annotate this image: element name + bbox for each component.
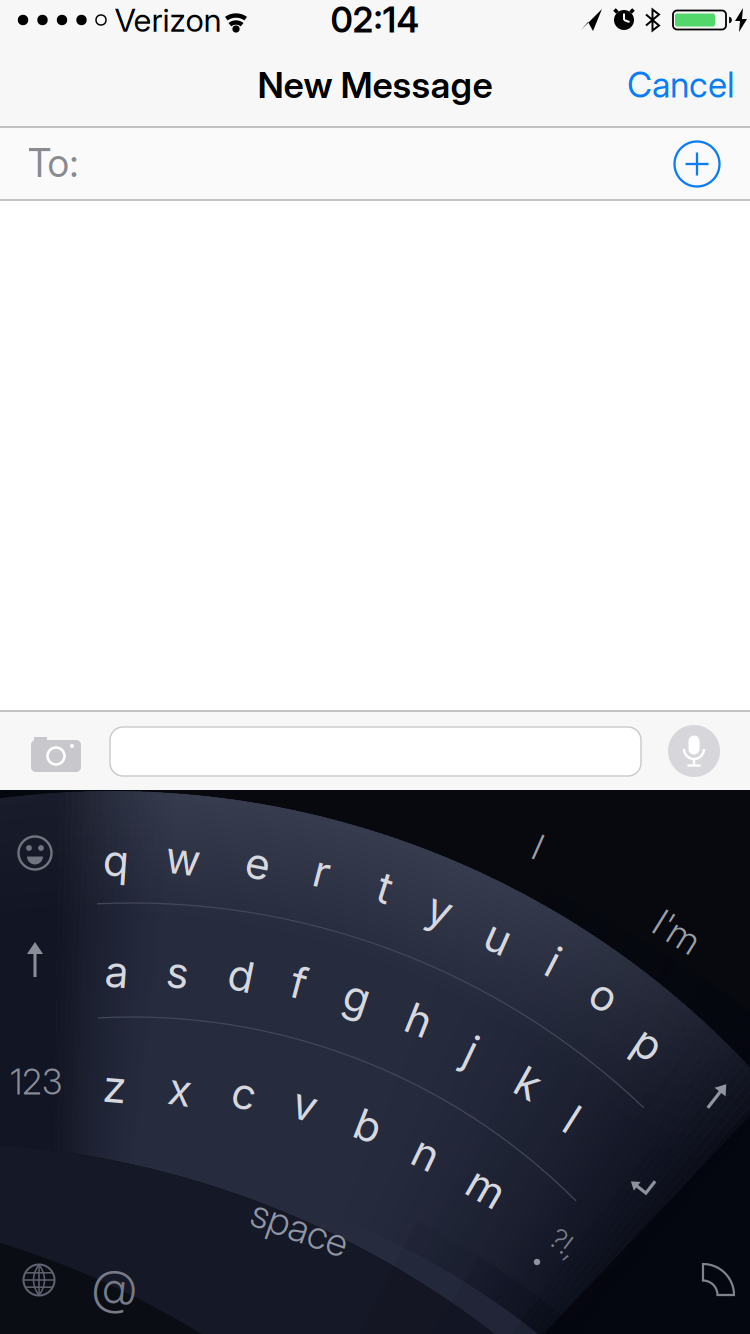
button[interactable]: i xyxy=(548,937,558,987)
staticText: h xyxy=(406,995,431,1045)
staticText: y xyxy=(428,885,452,935)
staticText: m xyxy=(467,1163,504,1213)
staticText: j xyxy=(466,1026,476,1076)
staticText: I xyxy=(534,826,542,868)
button[interactable]: x xyxy=(168,1065,191,1115)
button[interactable]: s xyxy=(166,948,189,998)
button[interactable]: Add Contact xyxy=(673,140,721,188)
button[interactable]: e xyxy=(245,839,270,889)
button[interactable]: Emoji xyxy=(13,831,57,875)
staticText: t xyxy=(378,863,392,913)
button[interactable]: m xyxy=(467,1163,504,1213)
staticText: i xyxy=(548,937,558,987)
staticText: I'm xyxy=(653,910,701,954)
staticText: Cancel xyxy=(627,65,735,105)
button[interactable]: Next keyboard xyxy=(17,1258,61,1302)
staticText: k xyxy=(516,1058,539,1108)
staticText: a xyxy=(105,947,129,997)
button[interactable]: w xyxy=(165,834,200,884)
staticText: 02:14 xyxy=(330,0,419,40)
staticText: o xyxy=(591,971,617,1021)
staticText: d xyxy=(228,951,254,1001)
staticText: f xyxy=(291,958,307,1008)
button[interactable]: y xyxy=(428,885,452,935)
button[interactable]: o xyxy=(591,971,617,1021)
staticText: @ xyxy=(91,1259,138,1315)
button[interactable]: I xyxy=(534,826,542,868)
button[interactable]: space xyxy=(249,1205,350,1251)
staticText: u xyxy=(485,913,510,963)
staticText: b xyxy=(355,1101,381,1151)
staticText: c xyxy=(232,1069,256,1119)
staticText: p xyxy=(635,1019,661,1069)
staticText: n xyxy=(413,1129,438,1179)
button[interactable]: I'm xyxy=(653,910,701,954)
button[interactable]: a xyxy=(105,947,129,997)
button[interactable]: k xyxy=(516,1058,539,1108)
button[interactable]: 123 xyxy=(10,1062,62,1102)
staticText: r xyxy=(314,847,330,897)
staticText: s xyxy=(166,948,189,998)
button[interactable]: ?!, xyxy=(550,1226,578,1259)
staticText: 123 xyxy=(10,1062,62,1102)
button[interactable]: Shift xyxy=(15,937,55,981)
staticText: Verizon xyxy=(114,1,221,39)
staticText: v xyxy=(293,1080,317,1130)
button[interactable]: n xyxy=(413,1129,438,1179)
button[interactable]: Camera xyxy=(26,728,86,776)
button[interactable]: g xyxy=(344,972,370,1022)
staticText: z xyxy=(103,1062,127,1112)
button[interactable]: h xyxy=(406,995,431,1045)
staticText: To: xyxy=(27,140,78,186)
button[interactable]: r xyxy=(314,847,330,897)
staticText: q xyxy=(103,836,129,886)
staticText: l xyxy=(567,1094,577,1144)
button[interactable]: Return xyxy=(621,1165,665,1209)
button[interactable]: u xyxy=(485,913,510,963)
button[interactable]: Dismiss keyboard xyxy=(697,1255,741,1299)
staticText: ?!, xyxy=(550,1226,578,1259)
button[interactable]: Cancel xyxy=(627,65,735,105)
button[interactable]: j xyxy=(466,1026,476,1076)
button[interactable]: c xyxy=(232,1069,256,1119)
button[interactable]: @ xyxy=(91,1259,138,1315)
button[interactable]: v xyxy=(293,1080,317,1130)
button[interactable]: z xyxy=(103,1062,127,1112)
button[interactable]: Dictation xyxy=(667,724,721,778)
staticText: x xyxy=(168,1065,191,1115)
staticText: e xyxy=(245,839,270,889)
button[interactable]: d xyxy=(228,951,254,1001)
button[interactable]: p xyxy=(635,1019,661,1069)
staticText: New Message xyxy=(257,64,492,106)
button[interactable]: b xyxy=(355,1101,381,1151)
button[interactable]: f xyxy=(291,958,307,1008)
button[interactable]: Delete xyxy=(695,1074,739,1118)
staticText: w xyxy=(165,834,200,884)
staticText: space xyxy=(249,1205,350,1251)
button[interactable]: q xyxy=(103,836,129,886)
button[interactable]: t xyxy=(378,863,392,913)
staticText: g xyxy=(344,972,370,1022)
button[interactable]: l xyxy=(567,1094,577,1144)
